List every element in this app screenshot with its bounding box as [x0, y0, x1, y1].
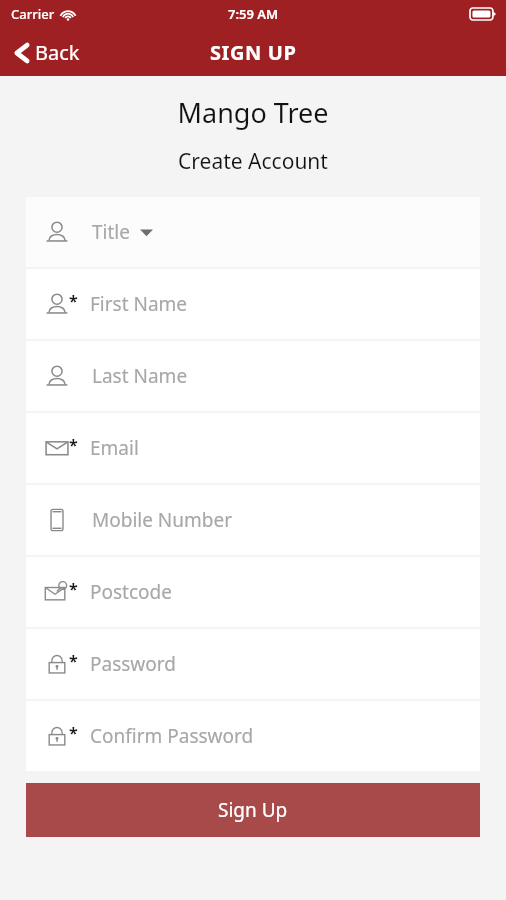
button[interactable]: Last Name [26, 341, 480, 411]
staticText: * [69, 722, 78, 744]
button[interactable]: Sign Up [26, 783, 480, 837]
button[interactable]: Mobile Number [26, 485, 480, 555]
staticText: Postcode [90, 579, 172, 605]
staticText: * [69, 290, 78, 312]
staticText: Carrier [11, 5, 55, 23]
staticText: SIGN UP [210, 39, 297, 66]
staticText: Create Account [0, 147, 506, 176]
staticText: Mobile Number [92, 507, 233, 533]
staticText: * [69, 578, 78, 600]
staticText: Sign Up [218, 797, 288, 823]
button[interactable]: * [26, 269, 480, 339]
staticText: Title [92, 219, 130, 245]
button[interactable]: * [26, 701, 480, 771]
staticText: First Name [90, 291, 188, 317]
button[interactable]: Back [10, 35, 84, 70]
button[interactable]: Title [26, 197, 480, 267]
staticText: Confirm Password [90, 723, 254, 749]
button[interactable]: * [26, 413, 480, 483]
staticText: * [69, 650, 78, 672]
staticText: Password [90, 651, 176, 677]
staticText: Mango Tree [0, 94, 506, 131]
staticText: Last Name [92, 363, 188, 389]
staticText: Email [90, 435, 139, 461]
staticText: 7:59 AM [228, 5, 279, 23]
staticText: Back [35, 39, 80, 66]
button[interactable]: * [26, 629, 480, 699]
button[interactable]: * [26, 557, 480, 627]
staticText: * [69, 434, 78, 456]
